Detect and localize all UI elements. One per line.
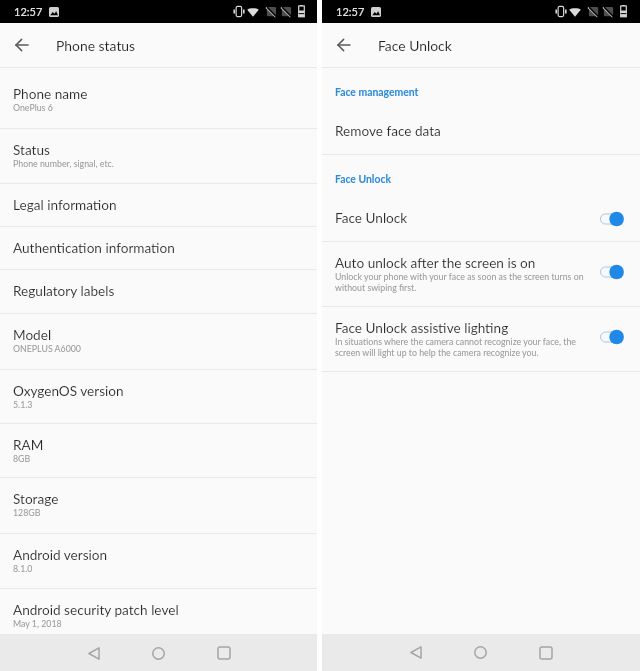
button[interactable]: Face Unlock [322, 197, 640, 241]
staticText: May 1, 2018 [13, 618, 62, 629]
button[interactable]: Recent apps [191, 635, 256, 671]
button[interactable]: Home [448, 634, 513, 671]
staticText: Unlock your phone with your face as soon… [335, 271, 590, 293]
button[interactable]: Home [126, 635, 191, 671]
staticText: Face management [335, 86, 419, 98]
staticText: Face Unlock [335, 210, 408, 226]
button[interactable]: Back [7, 30, 37, 60]
staticText: Storage [13, 491, 59, 507]
staticText: 12:57 [336, 5, 365, 18]
staticText: 8GB [13, 453, 31, 464]
button[interactable]: Android version [0, 534, 317, 588]
staticText: Model [13, 327, 52, 343]
button[interactable]: Regulatory labels [0, 270, 317, 313]
staticText: ONEPLUS A6000 [13, 343, 81, 354]
button[interactable]: Back [62, 635, 126, 671]
staticText: Authentication information [13, 240, 175, 256]
button[interactable]: Back [384, 634, 448, 671]
button[interactable]: Legal information [0, 184, 317, 226]
staticText: Remove face data [335, 123, 441, 139]
button[interactable]: Recent apps [513, 634, 578, 671]
button[interactable]: Status [0, 129, 317, 183]
staticText: Phone number, signal, etc. [13, 158, 114, 169]
staticText: 12:57 [14, 5, 43, 18]
button[interactable]: RAM [0, 424, 317, 477]
button[interactable]: Auto unlock after the screen is on [322, 242, 640, 306]
staticText: Phone status [56, 37, 136, 54]
staticText: 8.1.0 [13, 563, 33, 574]
staticText: OnePlus 6 [13, 102, 53, 113]
staticText: RAM [13, 437, 44, 453]
button[interactable]: Android security patch level [0, 589, 317, 634]
staticText: Legal information [13, 197, 117, 213]
staticText: 128GB [13, 507, 41, 518]
staticText: Face Unlock [378, 37, 452, 54]
button[interactable]: Storage [0, 478, 317, 533]
button[interactable]: OxygenOS version [0, 370, 317, 423]
staticText: 5.1.3 [13, 399, 33, 410]
staticText: In situations where the camera cannot re… [335, 336, 590, 358]
button[interactable]: Phone name [0, 68, 317, 128]
staticText: Android security patch level [13, 602, 179, 618]
staticText: Face Unlock [335, 173, 391, 185]
staticText: Auto unlock after the screen is on [335, 255, 536, 271]
staticText: Android version [13, 547, 108, 563]
staticText: Regulatory labels [13, 283, 115, 299]
button[interactable]: Remove face data [322, 110, 640, 154]
button[interactable]: Back [329, 30, 359, 60]
button[interactable]: Authentication information [0, 227, 317, 269]
staticText: OxygenOS version [13, 383, 124, 399]
button[interactable]: Face Unlock assistive lighting [322, 307, 640, 371]
staticText: Phone name [13, 86, 88, 102]
button[interactable]: Model [0, 314, 317, 369]
staticText: Face Unlock assistive lighting [335, 320, 509, 336]
staticText: Status [13, 142, 50, 158]
